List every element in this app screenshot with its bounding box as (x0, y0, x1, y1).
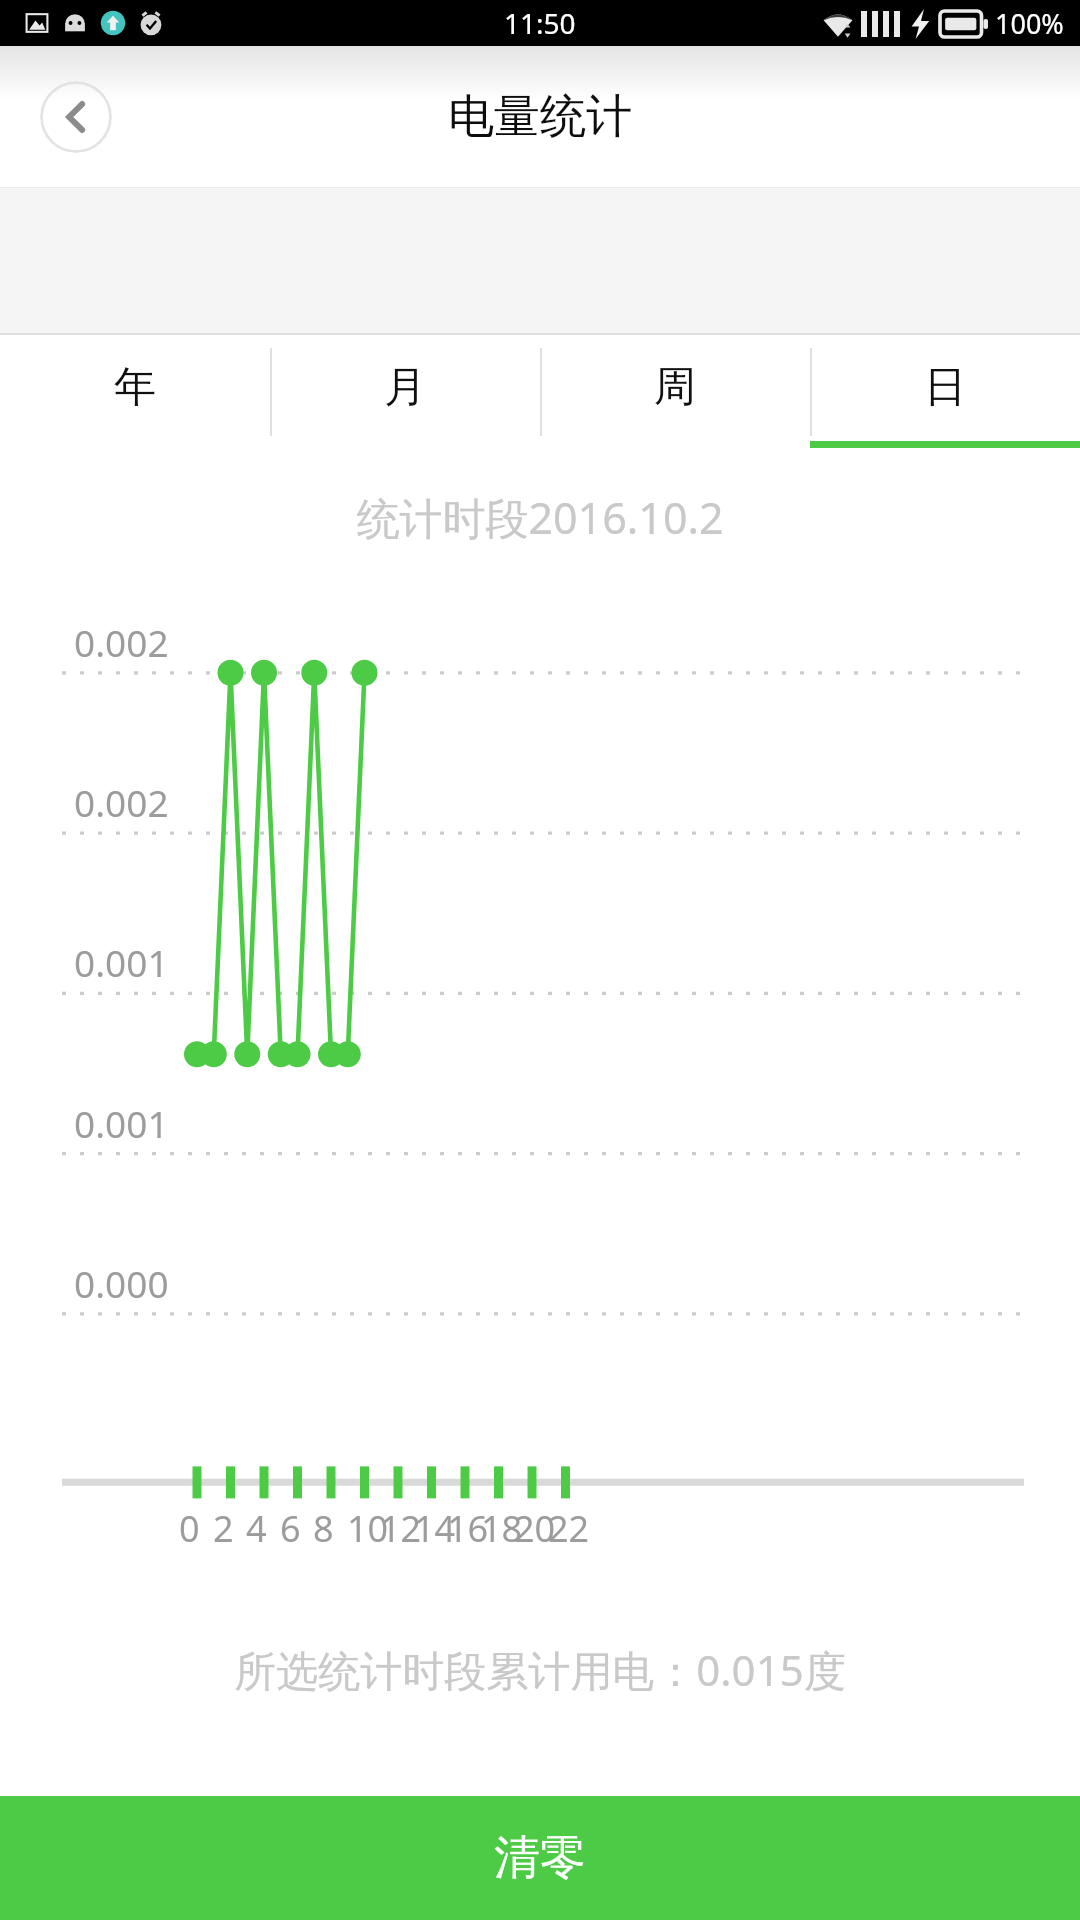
staticText: 12 (380, 1504, 422, 1553)
staticText: 统计时段2016.10.2 (0, 488, 1080, 547)
staticText: 14 (414, 1504, 456, 1553)
staticText: 100% (995, 5, 1064, 42)
staticText: 4 (246, 1504, 267, 1553)
button[interactable]: 月 (270, 335, 540, 448)
staticText: 8 (313, 1504, 334, 1553)
staticText: 清零 (494, 1829, 586, 1887)
staticText: 0 (179, 1504, 200, 1553)
staticText: 18 (481, 1504, 523, 1553)
button[interactable]: 日 (810, 335, 1080, 448)
staticText: 10 (347, 1504, 389, 1553)
staticText: 2 (213, 1504, 234, 1553)
button[interactable]: 周 (540, 335, 810, 448)
staticText: 0.001 (74, 1098, 169, 1148)
button[interactable]: Back (40, 81, 112, 153)
staticText: 日 (924, 361, 966, 414)
staticText: 11:50 (504, 4, 576, 42)
staticText: 0.000 (74, 1258, 169, 1308)
staticText: 6 (280, 1504, 301, 1553)
staticText: 20 (514, 1504, 556, 1553)
staticText: 月 (384, 361, 426, 414)
staticText: 年 (114, 361, 156, 414)
staticText: 0.001 (74, 937, 169, 987)
button[interactable]: 清零 (0, 1796, 1080, 1920)
staticText: 电量统计 (448, 88, 632, 146)
staticText: 0.002 (74, 617, 169, 667)
staticText: 16 (447, 1504, 489, 1553)
staticText: 周 (654, 361, 696, 414)
staticText: 0.002 (74, 777, 169, 827)
staticText: 所选统计时段累计用电：0.015度 (0, 1641, 1080, 1698)
button[interactable]: 年 (0, 335, 270, 448)
staticText: 22 (548, 1504, 590, 1553)
